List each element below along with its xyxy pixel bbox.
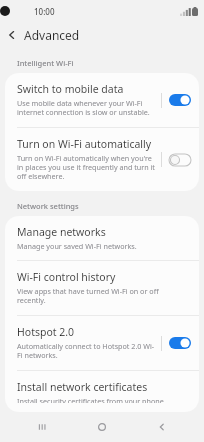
button[interactable]: Recents — [26, 412, 60, 442]
button[interactable]: Manage networks — [5, 216, 199, 260]
staticText: Switch to mobile data — [17, 82, 124, 96]
staticText: View apps that have turned Wi-Fi on or o… — [17, 286, 187, 306]
button[interactable]: Switch to mobile data — [5, 73, 199, 127]
staticText: Install security certificates from your … — [17, 396, 166, 403]
staticText: Manage your saved Wi-Fi networks. — [17, 241, 137, 251]
staticText: Install network certificates — [17, 380, 148, 394]
button[interactable]: Wi-Fi control history — [5, 261, 199, 315]
staticText: Turn on Wi-Fi automatically — [17, 137, 152, 151]
staticText: Manage networks — [17, 225, 106, 239]
button[interactable]: Back — [0, 23, 24, 47]
staticText: Hotspot 2.0 — [17, 325, 75, 339]
staticText: Automatically connect to Hotspot 2.0 Wi-… — [17, 341, 155, 361]
button[interactable]: Install network certificates — [5, 371, 199, 412]
button[interactable]: Off — [169, 154, 191, 166]
button[interactable]: On — [169, 94, 191, 106]
staticText: Advanced — [24, 27, 80, 43]
button[interactable]: Turn on Wi-Fi automatically — [5, 128, 199, 191]
button[interactable]: Hotspot 2.0 — [5, 316, 199, 370]
staticText: Network settings — [17, 201, 204, 211]
button[interactable]: Home — [85, 412, 119, 442]
staticText: Turn on Wi-Fi automatically when you're … — [17, 153, 155, 182]
staticText: Wi-Fi control history — [17, 270, 116, 284]
staticText: Intelligent Wi-Fi — [17, 58, 204, 68]
staticText: Use mobile data whenever your Wi-Fi inte… — [17, 98, 155, 118]
button[interactable]: On — [169, 337, 191, 349]
button[interactable]: Back — [145, 412, 179, 442]
staticText: 10:00 — [34, 6, 55, 17]
